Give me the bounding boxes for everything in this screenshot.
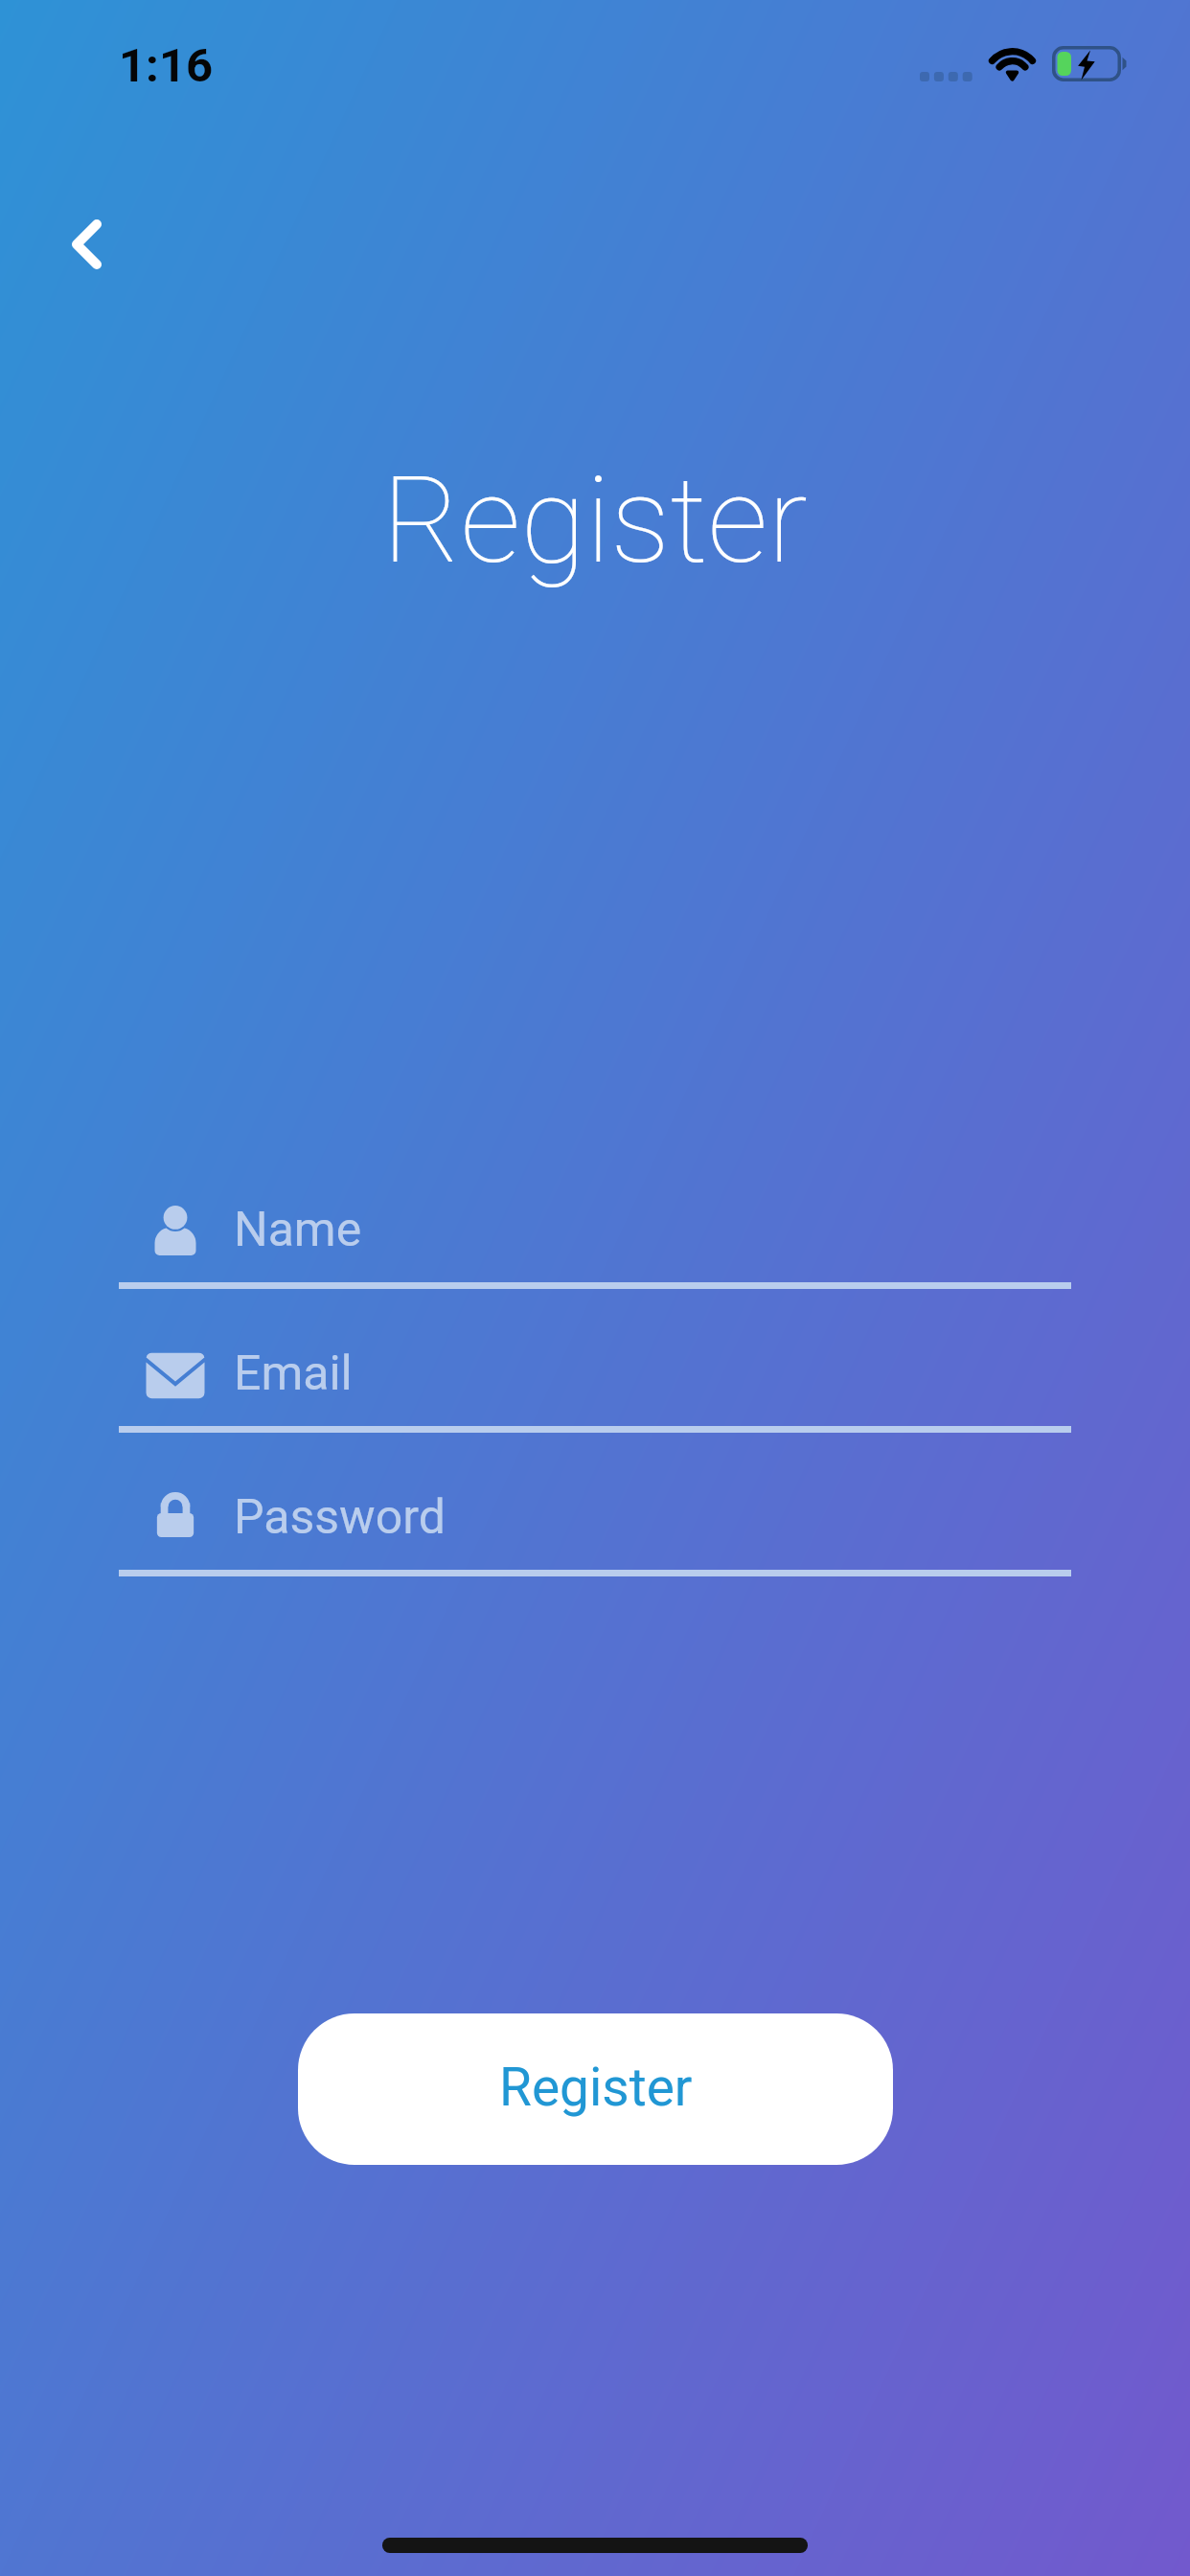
staticText: Password — [234, 1489, 446, 1546]
button[interactable]: Name — [119, 1172, 1071, 1289]
staticText: 1:16 — [119, 38, 214, 93]
button[interactable]: Email — [119, 1316, 1071, 1433]
staticText: Register — [499, 2057, 693, 2118]
staticText: Name — [234, 1202, 362, 1258]
button[interactable]: Register — [298, 2013, 893, 2165]
button[interactable]: Password — [119, 1460, 1071, 1576]
staticText: Email — [234, 1345, 353, 1402]
staticText: Register — [0, 450, 1190, 590]
button[interactable]: Back — [29, 188, 144, 301]
